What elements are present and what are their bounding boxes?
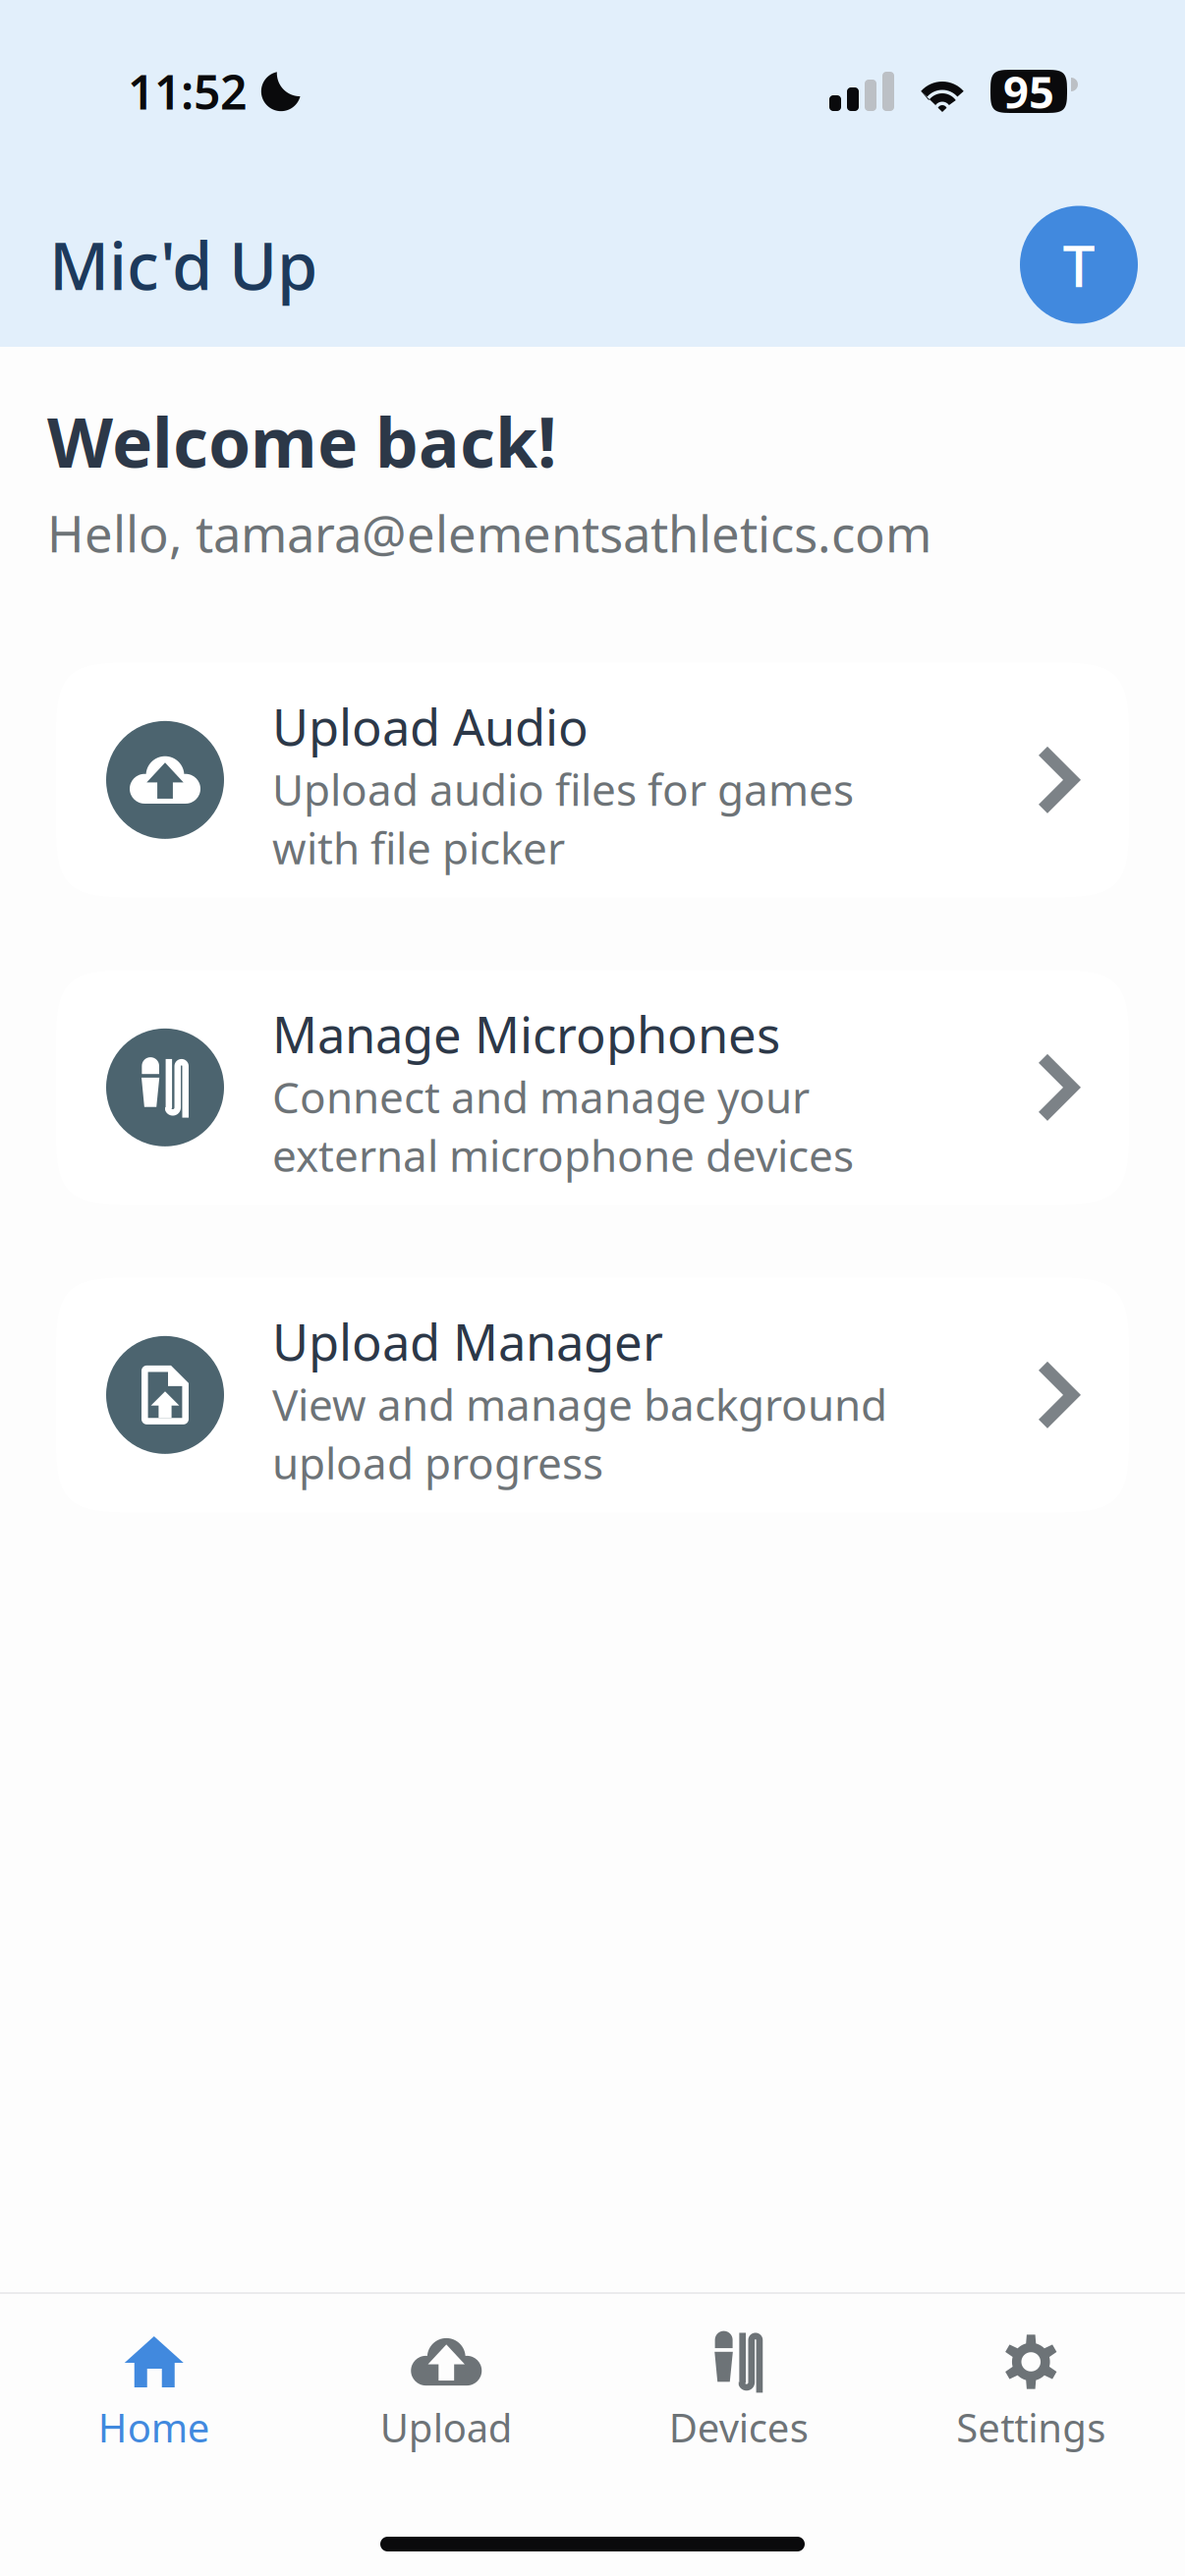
staticText: Upload Audio (272, 693, 589, 760)
staticText: Upload (380, 2401, 513, 2453)
staticText: Mic'd Up (49, 221, 317, 308)
staticText: View and manage background (272, 1376, 887, 1433)
staticText: external microphone devices (272, 1126, 854, 1184)
staticText: Manage Microphones (272, 1001, 780, 1067)
button[interactable]: Settings (885, 2294, 1177, 2465)
staticText: Devices (669, 2401, 808, 2453)
button[interactable]: Upload Manager (56, 1278, 1129, 1512)
staticText: Settings (956, 2401, 1106, 2453)
staticText: with file picker (272, 819, 565, 876)
button[interactable]: Devices (592, 2294, 885, 2465)
button[interactable]: Manage Microphones (56, 970, 1129, 1205)
staticText: Upload Manager (272, 1308, 663, 1375)
staticText: T (1063, 226, 1095, 303)
staticText: 11:52 (128, 60, 247, 123)
button[interactable]: Home (8, 2294, 300, 2465)
staticText: upload progress (272, 1434, 603, 1491)
staticText: Welcome back! (47, 396, 557, 486)
button[interactable]: Upload (300, 2294, 592, 2465)
staticText: Home (98, 2401, 210, 2453)
button[interactable]: Account (1020, 206, 1138, 324)
staticText: Upload audio files for games (272, 761, 854, 818)
staticText: 95 (1003, 62, 1054, 121)
staticText: Connect and manage your (272, 1068, 810, 1125)
button[interactable]: Upload Audio (56, 663, 1129, 897)
staticText: Hello, tamara@elementsathletics.com (47, 500, 931, 566)
